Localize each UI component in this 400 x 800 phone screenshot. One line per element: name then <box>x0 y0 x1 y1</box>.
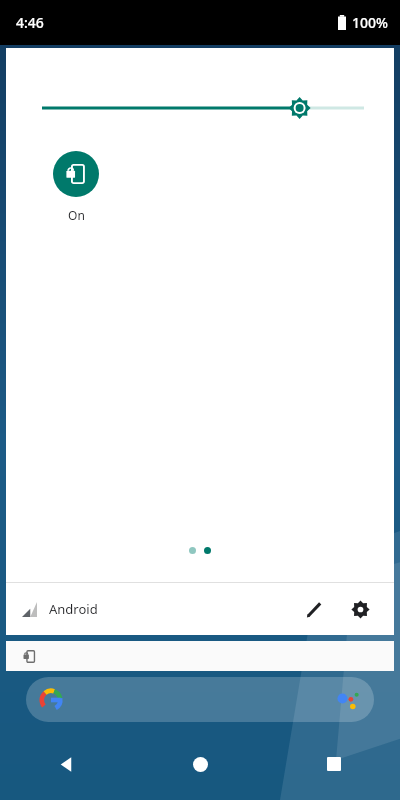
button[interactable]: Brightness <box>6 95 394 121</box>
button[interactable]: Android <box>22 600 98 618</box>
staticText: 4:46 <box>16 13 44 32</box>
staticText: On <box>68 207 85 223</box>
button[interactable]: Home <box>134 744 267 784</box>
button[interactable]: Search <box>26 677 374 722</box>
button[interactable] <box>6 641 394 671</box>
button[interactable] <box>204 547 211 554</box>
staticText: Android <box>49 600 98 618</box>
staticText: 100% <box>352 13 388 32</box>
button[interactable]: On <box>42 151 110 223</box>
button[interactable]: Recents <box>267 744 400 784</box>
button[interactable] <box>189 547 196 554</box>
button[interactable]: Back <box>0 744 134 784</box>
button[interactable]: Edit <box>296 591 332 627</box>
button[interactable]: Settings <box>342 591 378 627</box>
